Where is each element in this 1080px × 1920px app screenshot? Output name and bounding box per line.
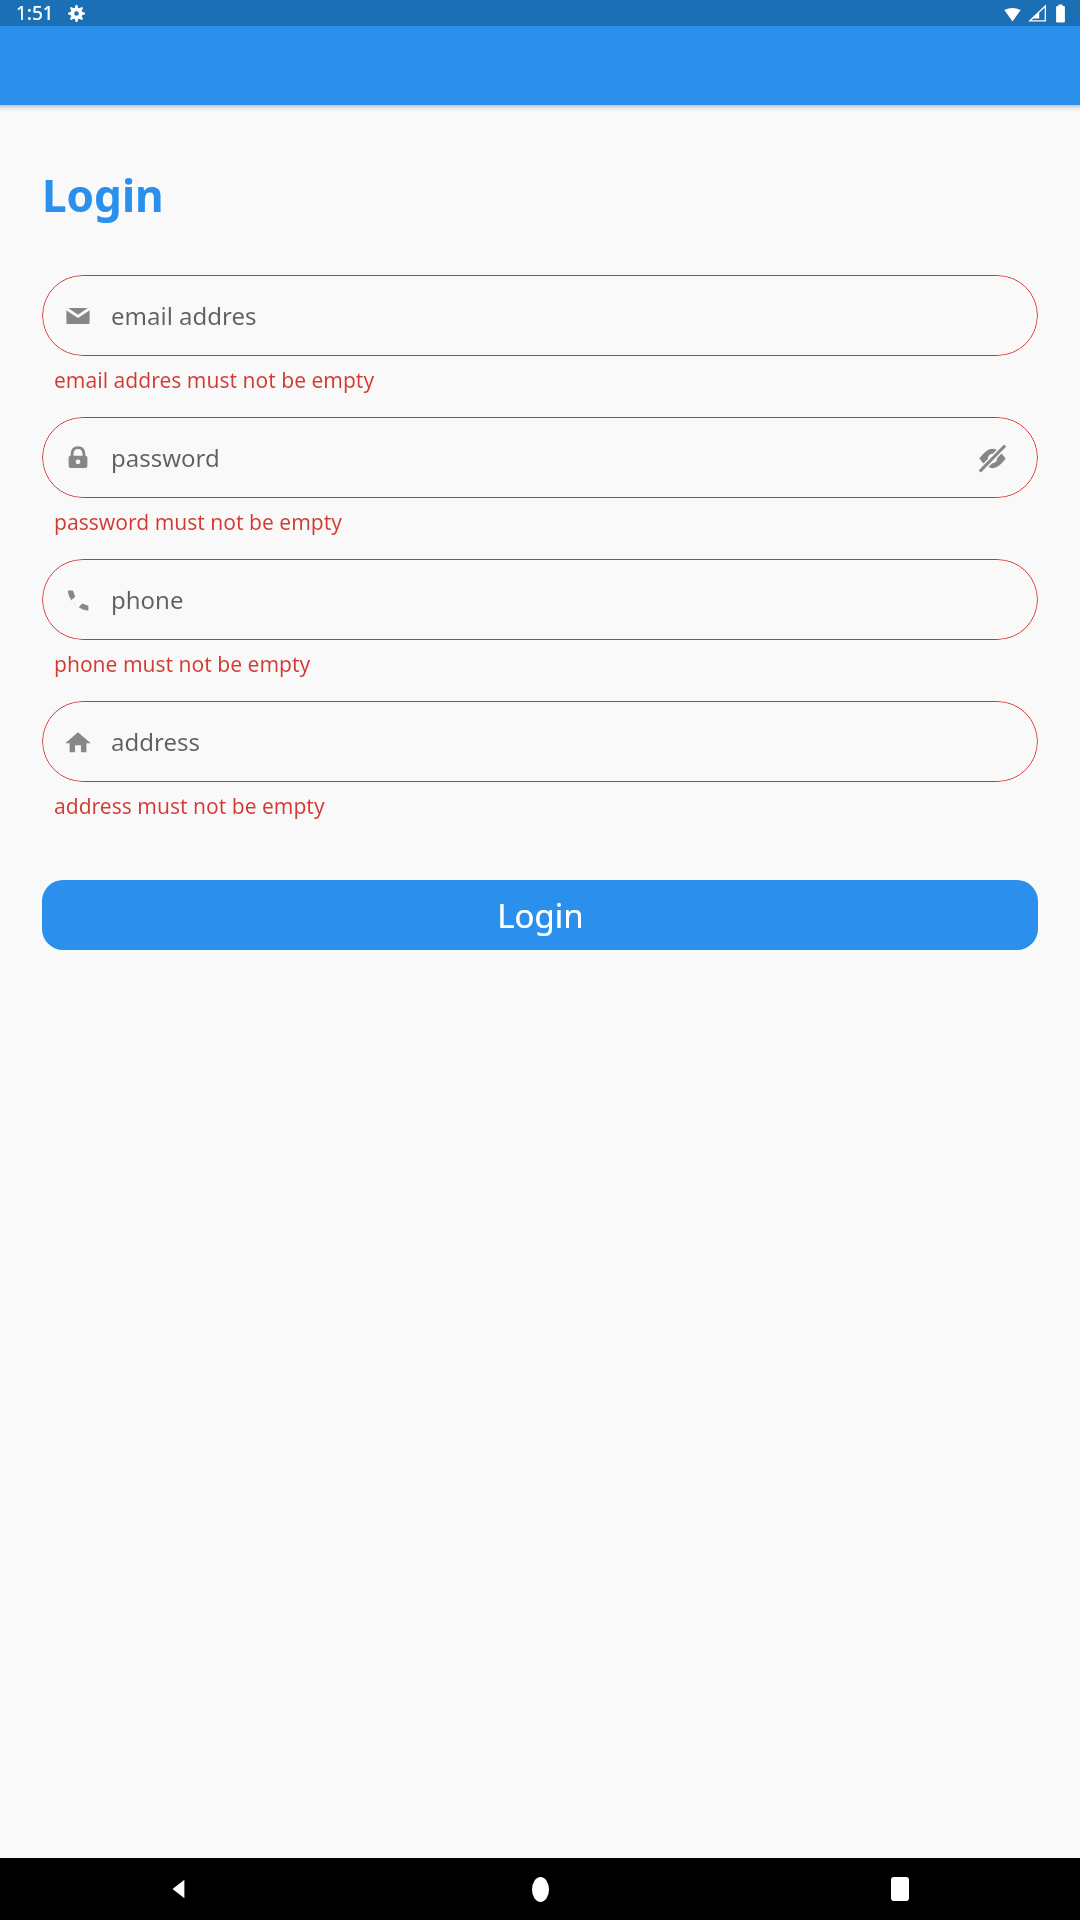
staticText: phone [111, 583, 184, 616]
button[interactable]: Home [360, 1858, 720, 1920]
button[interactable]: Toggle password visibility [972, 438, 1012, 478]
staticText: password must not be empty [54, 508, 342, 537]
other: Email [64, 302, 92, 330]
button[interactable]: Email [42, 275, 1038, 356]
staticText: phone must not be empty [54, 650, 311, 679]
button[interactable]: Recent apps [720, 1858, 1080, 1920]
button[interactable]: Login [42, 880, 1038, 950]
button[interactable]: Address [42, 701, 1038, 782]
button[interactable]: Password [42, 417, 1038, 498]
staticText: address [111, 725, 200, 758]
staticText: email addres [111, 299, 257, 332]
staticText: 1:51 [16, 0, 54, 26]
button[interactable]: Phone [42, 559, 1038, 640]
other: Password [64, 444, 92, 472]
staticText: Login [42, 165, 164, 225]
staticText: email addres must not be empty [54, 366, 375, 395]
button[interactable]: Back [0, 1858, 360, 1920]
other: Address [64, 728, 92, 756]
other: Phone [64, 586, 92, 614]
staticText: Login [497, 893, 584, 938]
staticText: address must not be empty [54, 792, 325, 821]
staticText: password [111, 441, 220, 474]
